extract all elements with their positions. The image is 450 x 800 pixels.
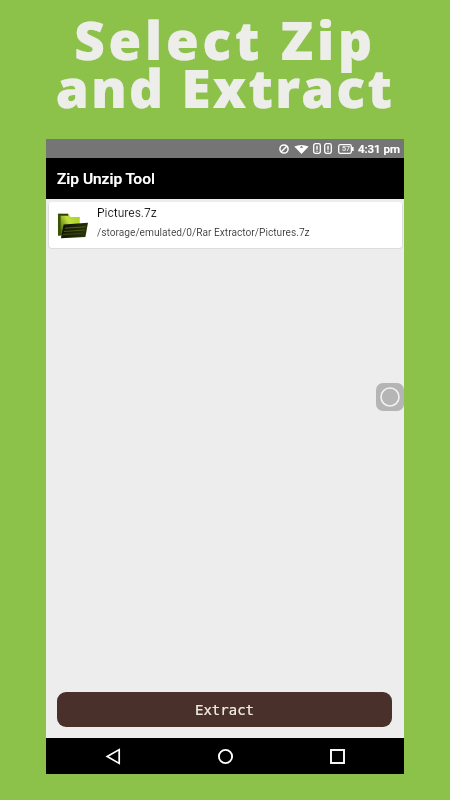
button[interactable]: Back <box>95 738 131 774</box>
staticText: Zip Unzip Tool <box>57 170 155 188</box>
button[interactable]: Extract <box>57 692 392 727</box>
staticText: Extract <box>195 702 255 718</box>
staticText: /storage/emulated/0/Rar Extractor/Pictur… <box>97 227 310 239</box>
staticText: Pictures.7z <box>97 206 157 220</box>
staticText: 57 <box>342 145 350 153</box>
button[interactable]: Recent apps <box>319 738 355 774</box>
staticText: Select Zip <box>0 3 450 75</box>
staticText: and Extract <box>0 51 450 123</box>
button[interactable]: Pictures.7z <box>49 202 402 248</box>
button[interactable]: Home <box>207 738 243 774</box>
button[interactable]: Scroll handle <box>376 383 404 411</box>
staticText: 4:31 pm <box>358 142 401 155</box>
